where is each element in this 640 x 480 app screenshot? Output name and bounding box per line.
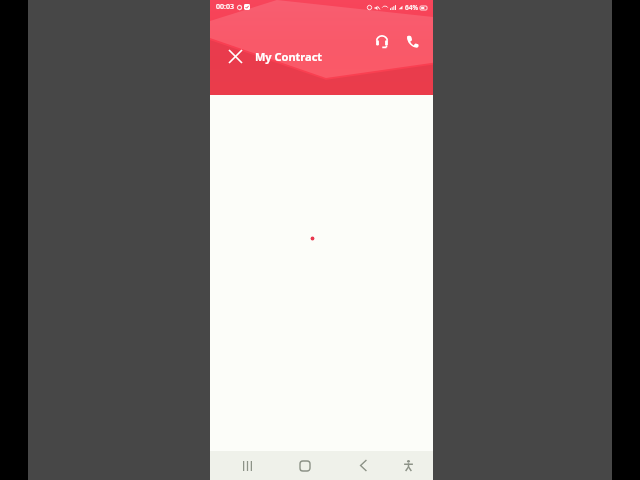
- staticText: 00:03: [216, 2, 234, 12]
- button[interactable]: Close: [222, 43, 248, 69]
- button[interactable]: Back: [346, 451, 380, 480]
- button[interactable]: Recent apps: [230, 451, 264, 480]
- button[interactable]: Customer support: [369, 28, 395, 54]
- staticText: 64%: [405, 3, 418, 12]
- button[interactable]: Accessibility: [391, 451, 425, 480]
- button[interactable]: Call: [399, 28, 425, 54]
- button[interactable]: Home: [288, 451, 322, 480]
- staticText: My Contract: [255, 49, 323, 64]
